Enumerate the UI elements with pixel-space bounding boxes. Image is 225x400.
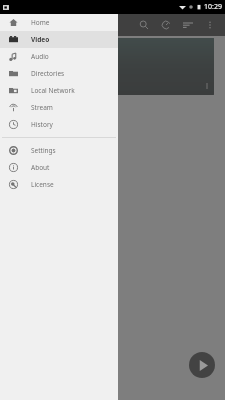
button[interactable]: Home — [0, 14, 118, 31]
staticText: Settings — [31, 146, 56, 155]
button[interactable]: Sort — [177, 14, 199, 36]
button[interactable]: History — [0, 116, 118, 133]
staticText: 04m06s | 480x272 — [9, 85, 53, 92]
button[interactable]: Audio — [0, 48, 118, 65]
button[interactable]: Directories — [0, 65, 118, 82]
staticText: Local Network — [31, 86, 75, 95]
button[interactable]: About — [0, 159, 118, 176]
staticText: History — [31, 120, 53, 129]
button[interactable]: License — [0, 176, 118, 193]
staticText: MUSE_The_Dark_Side__Offici — [9, 65, 103, 75]
button[interactable]: Video — [0, 31, 118, 48]
button[interactable]: Item options — [202, 81, 212, 91]
staticText: al_Music_Video_.mp4 — [9, 75, 79, 85]
button[interactable]: Stream — [0, 99, 118, 116]
button[interactable]: Play — [189, 352, 215, 378]
button[interactable]: More options — [199, 14, 221, 36]
button[interactable]: MUSE_The_Dark_Side__Offici — [6, 38, 214, 95]
button[interactable]: Refresh — [155, 14, 177, 36]
staticText: Stream — [31, 103, 53, 112]
staticText: Home — [31, 18, 50, 27]
staticText: License — [31, 180, 54, 189]
staticText: Audio — [31, 52, 49, 61]
button[interactable]: Settings — [0, 142, 118, 159]
staticText: About — [31, 163, 50, 172]
button[interactable]: Search — [133, 14, 155, 36]
staticText: 10:29 — [204, 2, 222, 12]
staticText: Directories — [31, 69, 65, 78]
staticText: Video — [31, 35, 50, 44]
button[interactable]: Local Network — [0, 82, 118, 99]
